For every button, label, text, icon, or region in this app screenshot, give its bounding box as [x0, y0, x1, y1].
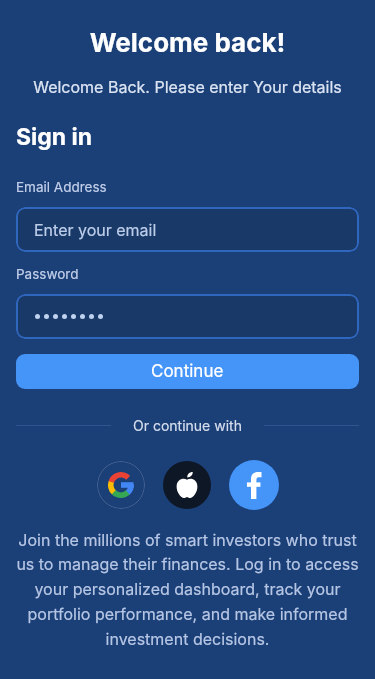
staticText: Welcome Back. Please enter Your details [0, 77, 375, 96]
staticText: Email Address [16, 179, 107, 195]
staticText: Sign in [16, 123, 93, 151]
button[interactable] [229, 460, 279, 510]
staticText: Password [16, 266, 79, 282]
button[interactable]: Enter your email [16, 207, 359, 252]
staticText: Welcome back! [0, 27, 375, 58]
button[interactable] [97, 461, 145, 509]
staticText: Join the millions of smart investors who… [0, 530, 375, 649]
button[interactable]: Continue [16, 354, 359, 389]
staticText: Enter your email [34, 220, 157, 239]
button[interactable] [163, 461, 211, 509]
staticText: Continue [151, 361, 224, 382]
staticText: Or continue with [133, 417, 242, 434]
button[interactable] [16, 294, 359, 339]
